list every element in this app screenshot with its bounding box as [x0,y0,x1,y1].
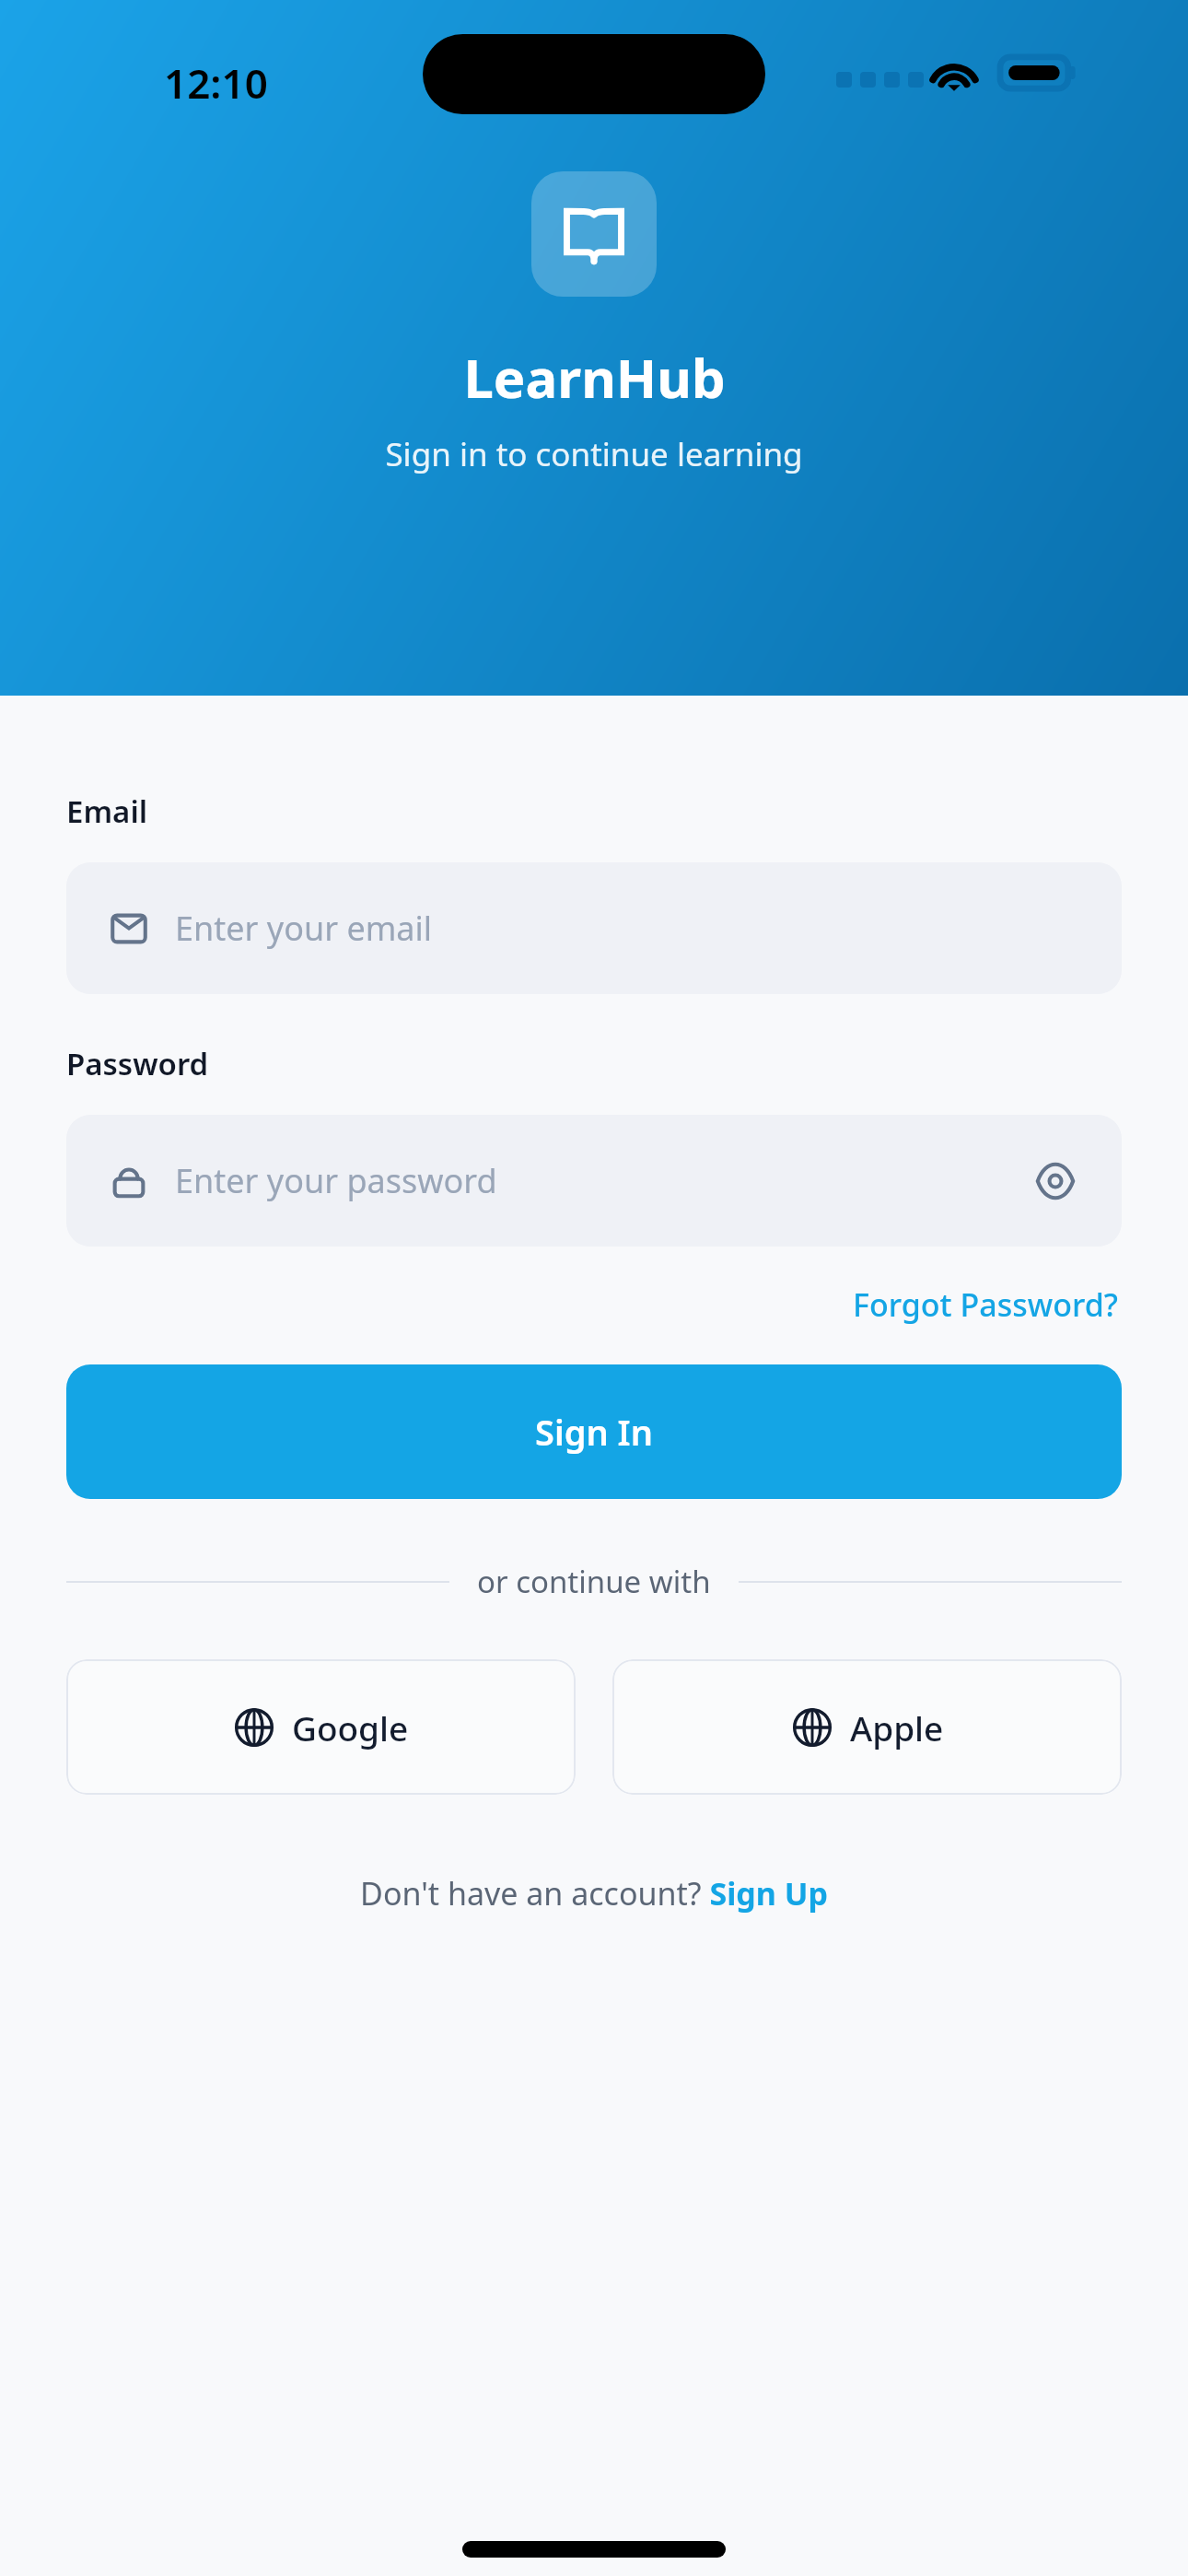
staticText: 12:10 [164,55,268,111]
button[interactable]: Enter your email [66,862,1122,994]
staticText: Apple [850,1704,944,1751]
button[interactable]: Forgot Password? [849,1278,1122,1331]
staticText: LearnHub [463,341,726,414]
staticText: Email [66,790,148,832]
staticText: Google [292,1704,409,1751]
button[interactable]: Google [66,1659,576,1795]
staticText: Don't have an account? Sign Up [360,1872,828,1914]
staticText: Password [66,1043,209,1084]
staticText: or continue with [477,1561,711,1602]
staticText: Sign In [535,1408,653,1456]
staticText: Enter your password [175,1158,1030,1203]
button[interactable]: Enter your password [66,1115,1122,1247]
staticText: Sign in to continue learning [385,432,803,476]
button[interactable]: Don't have an account? Sign Up [353,1865,835,1922]
button[interactable]: Show password [1030,1155,1081,1207]
button[interactable]: Sign In [66,1364,1122,1499]
staticText: Forgot Password? [853,1283,1118,1326]
button[interactable]: Apple [612,1659,1122,1795]
staticText: Enter your email [175,906,1081,951]
